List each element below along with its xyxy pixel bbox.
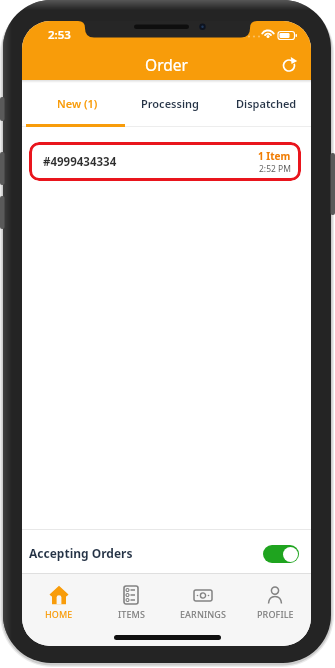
button[interactable] [263,545,299,563]
button[interactable]: HOME [22,573,95,623]
button[interactable]: ITEMS [95,573,167,623]
staticText: Dispatched [236,96,297,111]
button[interactable]: PROFILE [239,573,311,623]
staticText: Order [22,54,311,75]
button[interactable]: Dispatched [218,80,311,127]
button[interactable]: EARNINGS [167,573,239,623]
staticText: EARNINGS [180,608,227,620]
staticText: 2:52 PM [259,163,291,175]
staticText: Accepting Orders [29,545,133,561]
staticText: New (1) [57,96,98,111]
staticText: 2:53 [48,27,71,43]
staticText: Processing [141,96,199,111]
button[interactable]: Processing [122,80,218,127]
staticText: HOME [45,608,73,620]
button[interactable]: New (1) [25,80,122,127]
staticText: #4999434334 [43,154,117,170]
staticText: ITEMS [118,608,145,620]
button[interactable]: #4999434334 [29,142,301,181]
staticText: PROFILE [257,608,294,620]
staticText: 1 Item [258,149,291,163]
